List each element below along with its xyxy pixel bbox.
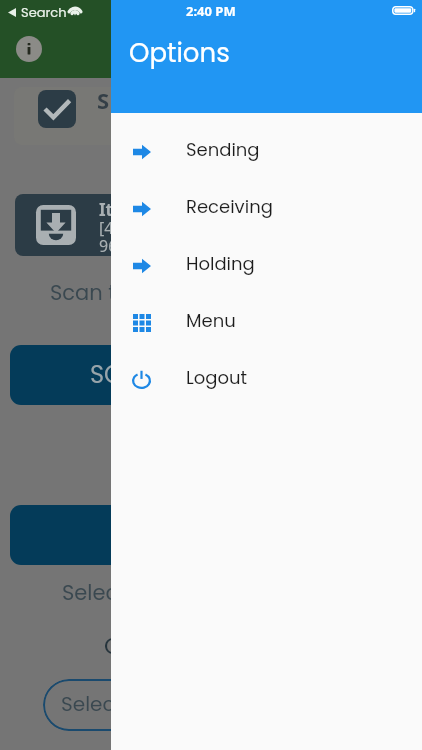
button[interactable]: Receiving xyxy=(111,180,422,237)
staticText: 96 xyxy=(99,235,118,257)
staticText: 2:40 PM xyxy=(186,2,236,20)
staticText: Logout xyxy=(186,365,248,390)
staticText: Select the item xyxy=(62,578,219,607)
staticText: Options xyxy=(129,35,230,71)
staticText: C xyxy=(104,630,122,662)
button[interactable]: Logout xyxy=(111,351,422,408)
staticText: Holding xyxy=(186,251,255,276)
button[interactable]: Menu xyxy=(111,294,422,351)
staticText: Select xyxy=(61,690,122,718)
button[interactable]: Sending xyxy=(111,123,422,180)
button[interactable]: Select xyxy=(43,679,243,731)
staticText: Scan the item xyxy=(50,278,196,307)
staticText: SCAN xyxy=(90,358,156,392)
staticText: Receiving xyxy=(186,194,273,219)
staticText: Menu xyxy=(186,308,236,333)
button[interactable]: Holding xyxy=(111,237,422,294)
staticText: Sending xyxy=(186,137,260,162)
button[interactable]: Info xyxy=(16,36,42,62)
staticText: S xyxy=(97,85,110,115)
button[interactable] xyxy=(10,505,340,565)
staticText: Search xyxy=(21,3,67,21)
button[interactable]: SCAN xyxy=(10,345,340,405)
staticText: [4 xyxy=(99,217,114,239)
staticText: It xyxy=(99,198,113,221)
